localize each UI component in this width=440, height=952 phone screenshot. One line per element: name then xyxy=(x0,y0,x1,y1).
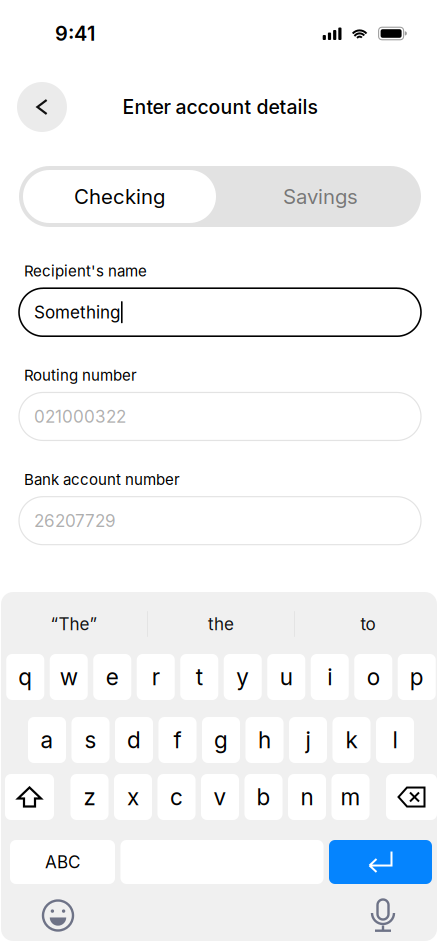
staticText: 26207729 xyxy=(34,510,116,531)
button[interactable]: t xyxy=(180,654,218,700)
staticText: k xyxy=(345,726,357,754)
staticText: Savings xyxy=(283,184,358,209)
staticText: y xyxy=(236,663,249,691)
staticText: x xyxy=(127,783,139,811)
staticText: s xyxy=(84,726,96,754)
staticText: b xyxy=(256,783,270,811)
staticText: q xyxy=(18,663,32,691)
button[interactable]: b xyxy=(244,774,282,820)
staticText: h xyxy=(258,726,271,754)
staticText: a xyxy=(40,726,53,754)
staticText: the xyxy=(208,614,234,634)
button[interactable]: Back xyxy=(17,82,67,132)
button[interactable]: w xyxy=(50,654,88,700)
staticText: p xyxy=(410,663,424,691)
staticText: 021000322 xyxy=(34,406,126,427)
staticText: d xyxy=(127,726,141,754)
button[interactable]: ABC xyxy=(10,840,115,884)
staticText: e xyxy=(106,663,119,691)
staticText: z xyxy=(83,783,95,811)
button[interactable]: 021000322 xyxy=(0,392,440,440)
button[interactable]: Emoji xyxy=(42,899,74,931)
staticText: g xyxy=(214,726,228,754)
button[interactable]: g xyxy=(202,717,240,763)
staticText: to xyxy=(360,614,375,634)
staticText: w xyxy=(60,663,78,691)
staticText: Checking xyxy=(74,184,165,209)
staticText: r xyxy=(152,663,160,691)
staticText: Routing number xyxy=(24,366,137,384)
staticText: v xyxy=(213,783,226,811)
button[interactable]: o xyxy=(354,654,392,700)
button[interactable]: i xyxy=(311,654,349,700)
button[interactable]: p xyxy=(398,654,436,700)
button[interactable]: r xyxy=(137,654,175,700)
button[interactable]: z xyxy=(70,774,108,820)
staticText: Bank account number xyxy=(24,470,180,489)
staticText: “The” xyxy=(50,614,97,634)
staticText: j xyxy=(305,726,310,754)
staticText: l xyxy=(392,726,397,754)
button[interactable]: d xyxy=(115,717,153,763)
button[interactable]: m xyxy=(331,774,369,820)
button[interactable]: e xyxy=(93,654,131,700)
button[interactable]: Shift xyxy=(5,774,54,820)
staticText: Recipient's name xyxy=(24,262,147,280)
button[interactable]: Something xyxy=(0,288,440,336)
button[interactable]: y xyxy=(224,654,262,700)
button[interactable]: n xyxy=(288,774,326,820)
button[interactable]: Delete xyxy=(386,774,437,820)
button[interactable]: Dictate xyxy=(372,899,394,932)
staticText: f xyxy=(173,726,181,754)
staticText: Something xyxy=(34,302,120,322)
staticText: 9:41 xyxy=(55,21,95,46)
button[interactable]: l xyxy=(376,717,414,763)
button[interactable]: f xyxy=(158,717,196,763)
button[interactable]: s xyxy=(71,717,109,763)
staticText: n xyxy=(300,783,313,811)
button[interactable]: return xyxy=(329,840,432,884)
button[interactable]: x xyxy=(114,774,152,820)
button[interactable]: q xyxy=(6,654,44,700)
button[interactable]: a xyxy=(28,717,66,763)
staticText: c xyxy=(170,783,183,811)
button[interactable]: to xyxy=(295,601,440,647)
button[interactable]: c xyxy=(157,774,195,820)
staticText: ABC xyxy=(45,852,80,872)
staticText: m xyxy=(340,783,360,811)
staticText: u xyxy=(280,663,293,691)
staticText: t xyxy=(196,663,203,691)
button[interactable]: u xyxy=(267,654,305,700)
button[interactable]: the xyxy=(148,601,294,647)
button[interactable]: Checking xyxy=(19,166,220,227)
staticText: i xyxy=(327,663,332,691)
button[interactable]: j xyxy=(289,717,327,763)
button[interactable]: k xyxy=(332,717,370,763)
button[interactable]: “The” xyxy=(1,601,147,647)
button[interactable]: Savings xyxy=(220,166,421,227)
staticText: Enter account details xyxy=(122,95,317,119)
staticText: o xyxy=(367,663,380,691)
button[interactable]: h xyxy=(245,717,283,763)
button[interactable]: 26207729 xyxy=(0,497,440,545)
button[interactable]: v xyxy=(201,774,239,820)
